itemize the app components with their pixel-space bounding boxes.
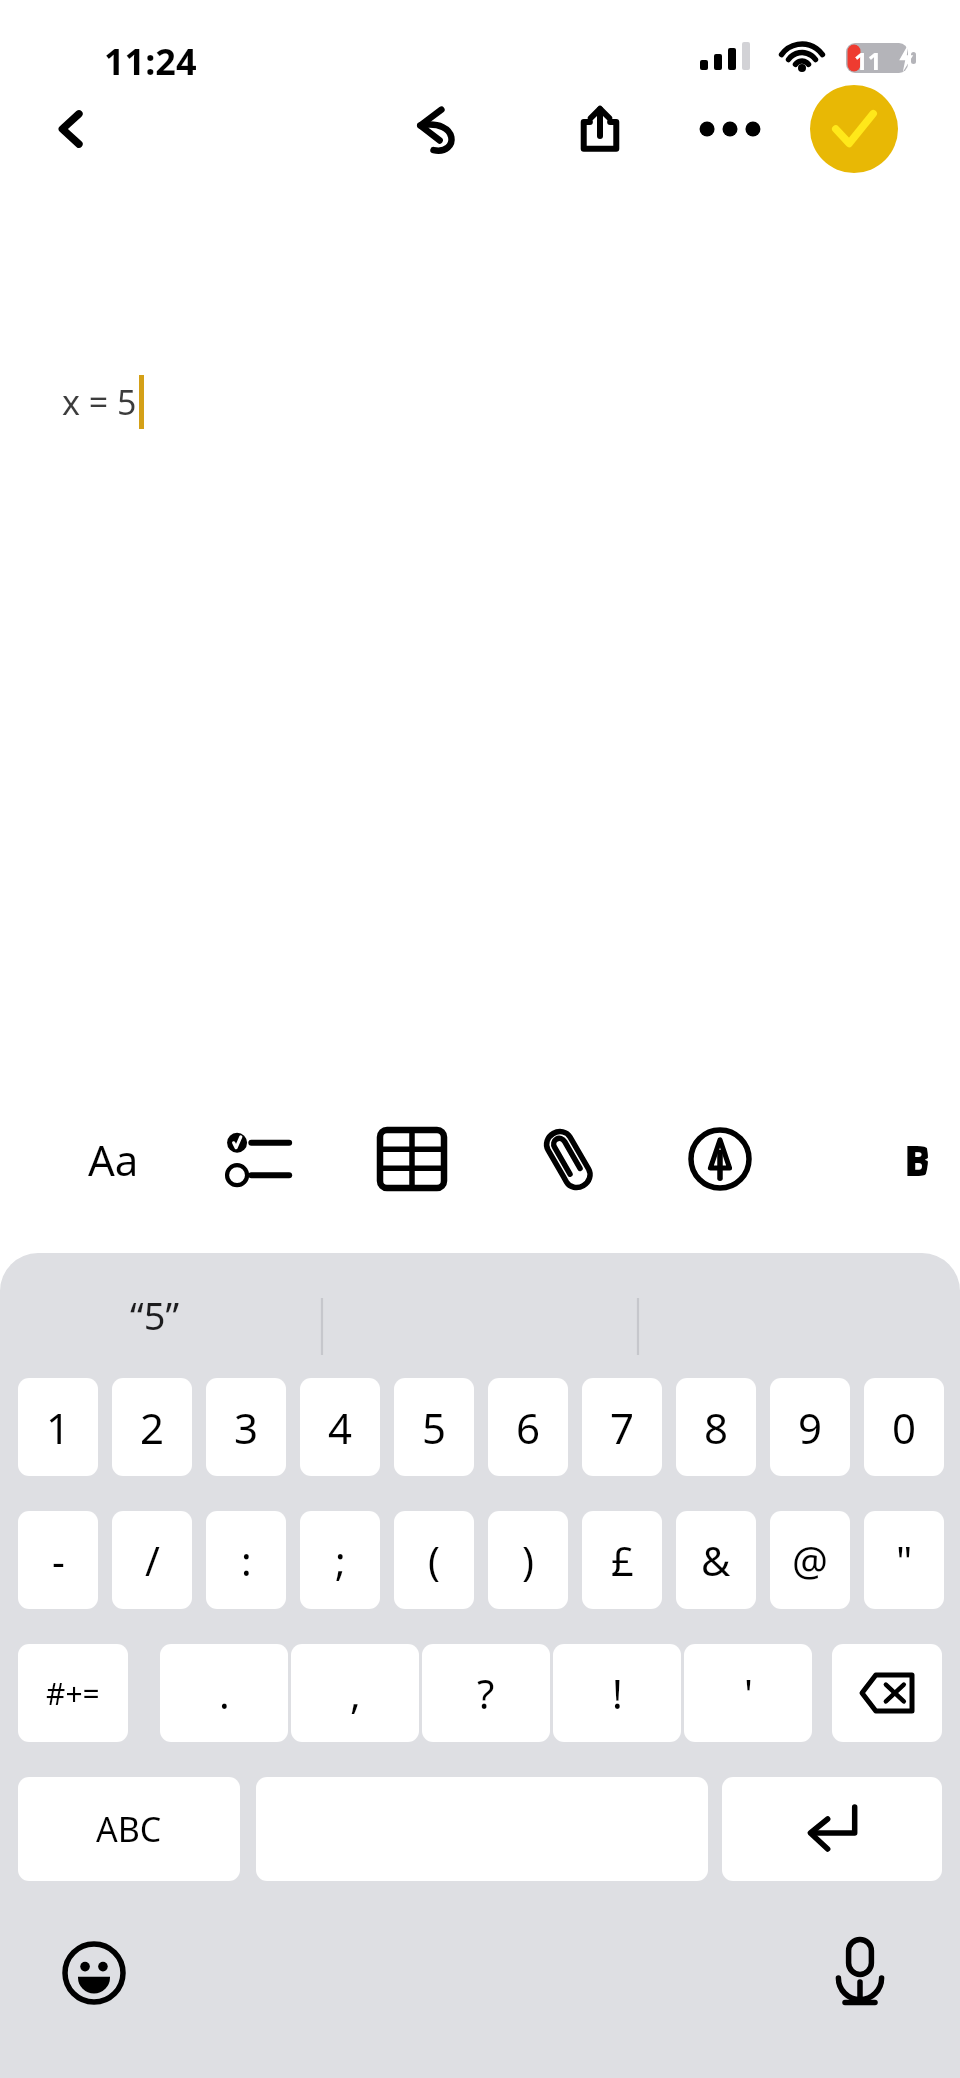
button[interactable]: B: [892, 1106, 928, 1212]
staticText: ABC: [96, 1806, 162, 1852]
button[interactable]: Backspace: [832, 1644, 942, 1742]
button[interactable]: 1: [18, 1378, 98, 1476]
button[interactable]: “5”: [130, 1289, 180, 1341]
staticText: £: [611, 1533, 634, 1587]
button[interactable]: .: [160, 1644, 288, 1742]
button[interactable]: 9: [770, 1378, 850, 1476]
staticText: .: [219, 1666, 230, 1720]
button[interactable]: Emoji: [52, 1931, 136, 2015]
button[interactable]: -: [18, 1511, 98, 1609]
staticText: 11:24: [104, 37, 197, 86]
button[interactable]: ": [864, 1511, 944, 1609]
button[interactable]: #+=: [18, 1644, 128, 1742]
button[interactable]: 3: [206, 1378, 286, 1476]
staticText: B: [904, 1131, 928, 1188]
button[interactable]: (: [394, 1511, 474, 1609]
button[interactable]: ;: [300, 1511, 380, 1609]
staticText: ;: [335, 1533, 346, 1587]
staticText: -: [52, 1533, 65, 1587]
staticText: 6: [516, 1399, 541, 1456]
button[interactable]: 4: [300, 1378, 380, 1476]
button[interactable]: £: [582, 1511, 662, 1609]
staticText: ,: [350, 1666, 361, 1720]
button[interactable]: Markup: [660, 1106, 780, 1212]
button[interactable]: Table: [352, 1106, 472, 1212]
staticText: :: [241, 1533, 252, 1587]
button[interactable]: Dictation: [818, 1931, 902, 2015]
staticText: 7: [610, 1399, 635, 1456]
button[interactable]: ?: [422, 1644, 550, 1742]
staticText: ): [522, 1533, 534, 1587]
staticText: (: [428, 1533, 440, 1587]
button[interactable]: Back: [30, 88, 112, 170]
staticText: ": [896, 1533, 913, 1587]
button[interactable]: 0: [864, 1378, 944, 1476]
staticText: 1: [46, 1399, 71, 1456]
staticText: 3: [234, 1399, 259, 1456]
staticText: ': [744, 1666, 753, 1720]
button[interactable]: &: [676, 1511, 756, 1609]
button[interactable]: Attach: [508, 1106, 628, 1212]
staticText: 8: [704, 1399, 729, 1456]
button[interactable]: 6: [488, 1378, 568, 1476]
button[interactable]: ': [684, 1644, 812, 1742]
staticText: #+=: [46, 1673, 100, 1714]
button[interactable]: 7: [582, 1378, 662, 1476]
staticText: ?: [477, 1666, 495, 1720]
button[interactable]: @: [770, 1511, 850, 1609]
staticText: 5: [422, 1399, 447, 1456]
staticText: Aa: [88, 1131, 139, 1188]
staticText: /: [145, 1533, 160, 1587]
button[interactable]: ,: [291, 1644, 419, 1742]
staticText: x = 5: [62, 379, 137, 425]
button[interactable]: More options: [680, 88, 780, 170]
button[interactable]: 2: [112, 1378, 192, 1476]
button[interactable]: Done: [810, 85, 898, 173]
staticText: !: [612, 1666, 623, 1720]
button[interactable]: /: [112, 1511, 192, 1609]
button[interactable]: !: [553, 1644, 681, 1742]
button[interactable]: :: [206, 1511, 286, 1609]
staticText: &: [701, 1533, 731, 1587]
staticText: 11: [854, 44, 882, 77]
button[interactable]: Aa: [50, 1106, 176, 1212]
button[interactable]: ): [488, 1511, 568, 1609]
staticText: 4: [328, 1399, 353, 1456]
staticText: 0: [892, 1399, 917, 1456]
button[interactable]: Share: [552, 88, 648, 170]
staticText: @: [792, 1533, 828, 1587]
button[interactable]: ABC: [18, 1777, 240, 1881]
button[interactable]: Return: [722, 1777, 942, 1881]
button[interactable]: Undo: [396, 88, 478, 170]
button[interactable]: Checklist: [200, 1106, 320, 1212]
button[interactable]: 5: [394, 1378, 474, 1476]
button[interactable]: 8: [676, 1378, 756, 1476]
staticText: 2: [140, 1399, 165, 1456]
staticText: 9: [798, 1399, 823, 1456]
